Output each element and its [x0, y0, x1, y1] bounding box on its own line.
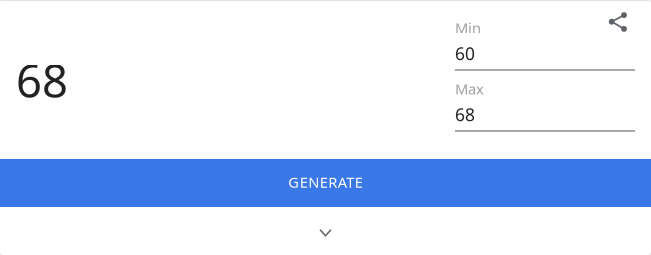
staticText: Max — [455, 79, 484, 98]
staticText: 68 — [16, 50, 68, 110]
button[interactable]: Min — [455, 18, 635, 71]
staticText: 60 — [455, 42, 475, 65]
button[interactable]: Share — [601, 3, 635, 37]
staticText: 68 — [455, 103, 475, 126]
button[interactable]: Max — [455, 79, 635, 132]
staticText: Min — [455, 18, 481, 37]
button[interactable]: Show more — [303, 207, 347, 253]
staticText: GENERATE — [288, 172, 363, 192]
button[interactable]: GENERATE — [0, 159, 651, 207]
